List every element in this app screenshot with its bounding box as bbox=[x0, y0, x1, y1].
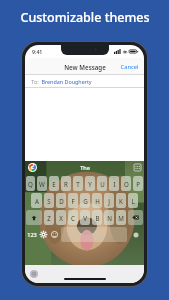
staticText: R bbox=[64, 180, 68, 188]
staticText: K bbox=[119, 197, 123, 205]
staticText: To: bbox=[31, 78, 39, 85]
button[interactable]: R bbox=[61, 176, 71, 191]
staticText: J bbox=[108, 197, 110, 205]
button[interactable]: K bbox=[116, 193, 126, 208]
staticText: C bbox=[71, 214, 75, 222]
staticText: D bbox=[59, 197, 64, 205]
button[interactable]: Q bbox=[26, 176, 35, 191]
button[interactable]: C bbox=[68, 210, 78, 225]
button[interactable]: Space bbox=[61, 227, 127, 242]
staticText: H bbox=[95, 197, 100, 205]
staticText: Customizable themes bbox=[20, 9, 150, 26]
staticText: M bbox=[118, 214, 124, 222]
button[interactable]: F bbox=[68, 193, 78, 208]
button[interactable]: 123 bbox=[26, 227, 37, 242]
staticText: Z bbox=[47, 214, 51, 222]
staticText: Q bbox=[28, 180, 33, 188]
staticText: X bbox=[59, 214, 63, 222]
button[interactable]: D bbox=[56, 193, 66, 208]
staticText: B bbox=[95, 214, 100, 222]
staticText: I bbox=[113, 180, 116, 188]
button[interactable]: J bbox=[104, 193, 114, 208]
button[interactable]: Shift bbox=[26, 210, 42, 225]
button[interactable]: S bbox=[44, 193, 54, 208]
button[interactable]: G bbox=[80, 193, 90, 208]
button[interactable]: T bbox=[73, 176, 83, 191]
staticText: G bbox=[83, 197, 88, 205]
staticText: A bbox=[35, 197, 39, 205]
staticText: U bbox=[100, 180, 105, 188]
button[interactable]: Z bbox=[44, 210, 54, 225]
staticText: 123 bbox=[27, 231, 37, 239]
button[interactable]: Y bbox=[85, 176, 95, 191]
staticText: E bbox=[52, 180, 56, 188]
button[interactable]: X bbox=[56, 210, 66, 225]
staticText: The bbox=[80, 164, 90, 172]
staticText: T bbox=[76, 180, 80, 188]
staticText: S bbox=[47, 197, 51, 205]
button[interactable]: O bbox=[121, 176, 131, 191]
staticText: L bbox=[131, 197, 135, 205]
button[interactable]: Emoji bbox=[49, 226, 60, 243]
staticText: Brendan Dougherty bbox=[41, 78, 92, 85]
button[interactable]: P bbox=[133, 176, 143, 191]
button[interactable]: Return bbox=[129, 227, 143, 242]
staticText: O bbox=[124, 180, 129, 188]
button[interactable]: Cancel bbox=[115, 61, 144, 73]
button[interactable]: V bbox=[80, 210, 90, 225]
button[interactable]: Google search bbox=[28, 163, 37, 172]
staticText: 9:41 bbox=[32, 48, 43, 55]
button[interactable]: Settings bbox=[38, 226, 49, 243]
button[interactable]: N bbox=[104, 210, 114, 225]
staticText: F bbox=[71, 197, 75, 205]
staticText: N bbox=[107, 214, 112, 222]
button[interactable]: To: bbox=[25, 75, 144, 88]
button[interactable]: W bbox=[37, 176, 47, 191]
button[interactable]: U bbox=[97, 176, 107, 191]
button[interactable]: I bbox=[109, 176, 119, 191]
button[interactable]: Audio message bbox=[30, 270, 38, 278]
button[interactable]: Backspace bbox=[128, 210, 143, 225]
staticText: W bbox=[39, 180, 45, 188]
button[interactable]: Keyboard options bbox=[134, 164, 141, 171]
button[interactable]: M bbox=[116, 210, 126, 225]
staticText: P bbox=[136, 180, 140, 188]
button[interactable]: A bbox=[31, 193, 42, 208]
staticText: Y bbox=[88, 180, 92, 188]
staticText: Cancel bbox=[120, 63, 139, 71]
button[interactable]: E bbox=[49, 176, 59, 191]
button[interactable]: H bbox=[92, 193, 102, 208]
button[interactable]: L bbox=[128, 193, 138, 208]
staticText: New Message bbox=[64, 63, 106, 71]
staticText: V bbox=[83, 214, 87, 222]
button[interactable]: B bbox=[92, 210, 102, 225]
